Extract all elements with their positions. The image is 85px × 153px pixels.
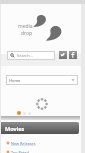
staticText: media (18, 23, 33, 30)
button[interactable]: New Releases (6, 139, 36, 147)
staticText: Search... (17, 53, 33, 58)
staticText: Movies (5, 125, 25, 132)
staticText: Home (9, 78, 21, 83)
staticText: New Releases (11, 141, 36, 146)
button[interactable]: Twitter (59, 51, 67, 59)
staticText: Top Rated (11, 150, 29, 153)
button[interactable]: Movies (1, 122, 79, 134)
button[interactable]: Top Rated (6, 148, 29, 153)
button[interactable]: Facebook (69, 51, 77, 59)
button[interactable]: Home (6, 75, 78, 85)
button[interactable]: Search... (7, 51, 55, 60)
staticText: drop (21, 30, 33, 37)
